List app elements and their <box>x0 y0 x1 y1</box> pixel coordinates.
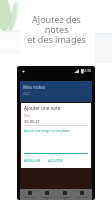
button[interactable]: AJOUTER <box>48 158 63 163</box>
button[interactable]: Ajouter une image ou une photo <box>24 129 70 133</box>
button[interactable]: Tab 1 <box>22 189 38 200</box>
staticText: Ajouter une note <box>24 105 61 111</box>
staticText: 30.05.21 <box>24 119 40 124</box>
staticText: 12:30 <box>82 68 91 73</box>
button[interactable]: Tab 2 <box>39 189 55 200</box>
staticText: 2021 <box>23 91 32 96</box>
staticText: Mes notes <box>23 84 46 90</box>
staticText: Titre <box>24 114 30 118</box>
staticText: Ajoutez des notes et des images <box>27 13 86 46</box>
button[interactable]: Mes notes <box>20 81 92 102</box>
button[interactable]: Tab 4 <box>74 189 90 200</box>
button[interactable]: ANNULER <box>24 158 41 163</box>
button[interactable]: Tab 3 <box>57 189 73 200</box>
